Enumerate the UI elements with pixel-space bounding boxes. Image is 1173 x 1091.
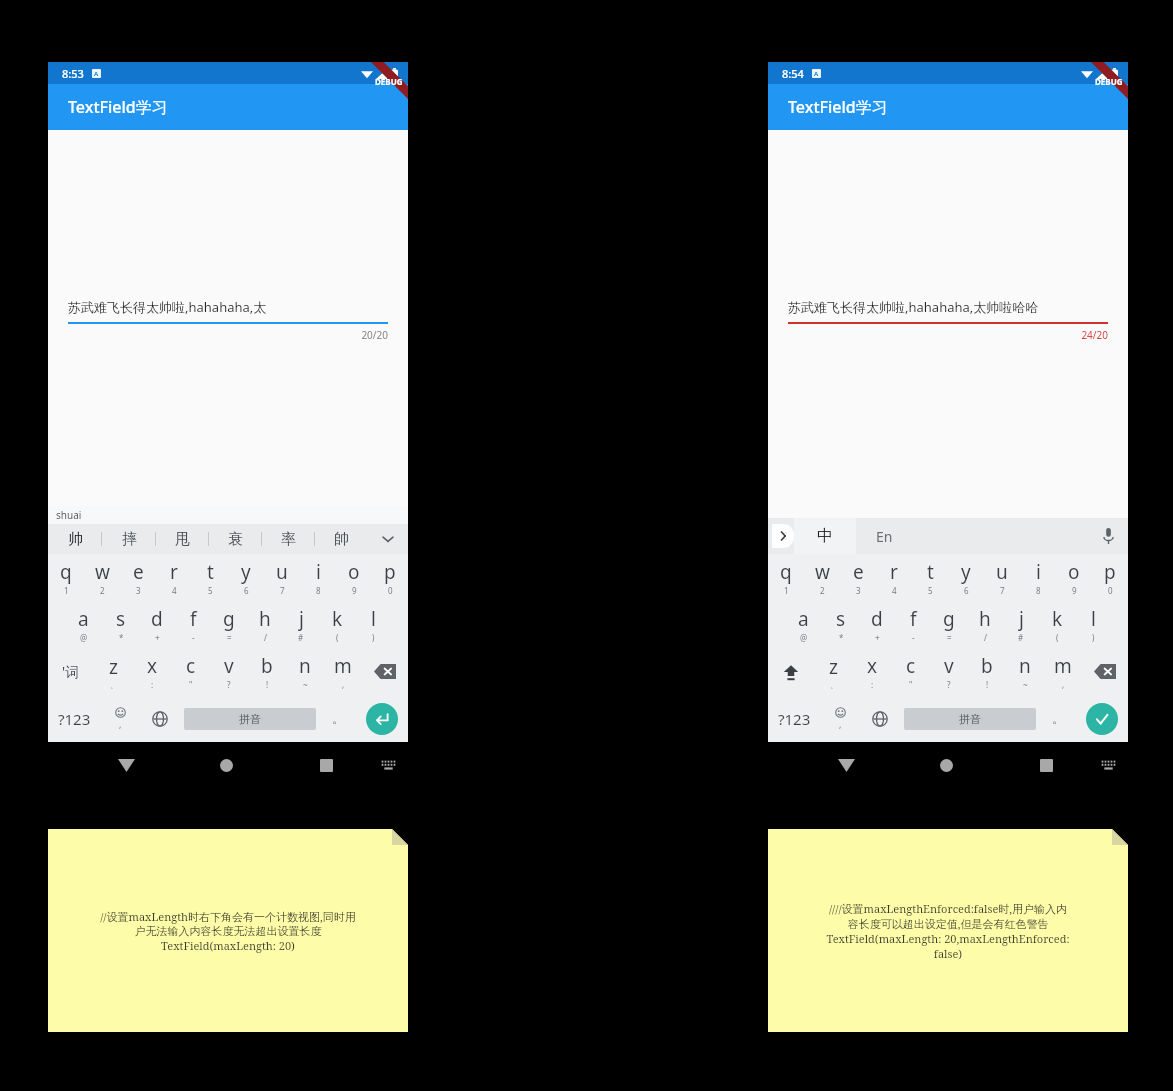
button[interactable]: v bbox=[930, 648, 968, 695]
button[interactable]: Enter bbox=[366, 703, 398, 735]
button[interactable]: a bbox=[65, 601, 102, 648]
button[interactable]: Home bbox=[926, 745, 966, 785]
button[interactable]: Confirm bbox=[1086, 703, 1118, 735]
button[interactable]: Emoji bbox=[820, 695, 860, 742]
button[interactable]: 摔 bbox=[102, 524, 156, 554]
button[interactable]: c bbox=[172, 648, 210, 695]
button[interactable]: 拼音 bbox=[904, 708, 1036, 730]
button[interactable]: y bbox=[228, 554, 264, 601]
button[interactable]: Word mode bbox=[48, 648, 94, 695]
button[interactable]: En bbox=[856, 518, 1088, 554]
button[interactable]: n bbox=[286, 648, 324, 695]
button[interactable]: i bbox=[1020, 554, 1056, 601]
button[interactable]: k bbox=[1039, 601, 1075, 648]
button[interactable]: z bbox=[94, 648, 133, 695]
button[interactable]: g bbox=[931, 601, 967, 648]
button[interactable]: Expand toolbar bbox=[772, 524, 794, 548]
staticText: '词 bbox=[62, 662, 80, 681]
button[interactable]: w bbox=[804, 554, 840, 601]
button[interactable]: 甩 bbox=[156, 524, 209, 554]
button[interactable]: b bbox=[248, 648, 286, 695]
button[interactable]: x bbox=[133, 648, 172, 695]
button[interactable]: Shift bbox=[768, 648, 814, 695]
button[interactable]: Change keyboard bbox=[860, 695, 900, 742]
button[interactable]: e bbox=[840, 554, 876, 601]
button[interactable]: b bbox=[968, 648, 1006, 695]
button[interactable]: s bbox=[102, 601, 139, 648]
button[interactable]: 。 bbox=[320, 695, 356, 742]
button[interactable]: o bbox=[336, 554, 372, 601]
button[interactable]: 拼音 bbox=[184, 708, 316, 730]
button[interactable]: Backspace bbox=[362, 648, 408, 695]
staticText: o bbox=[1068, 559, 1080, 585]
staticText: " bbox=[909, 679, 913, 690]
button[interactable]: y bbox=[948, 554, 984, 601]
button[interactable]: ?123 bbox=[48, 695, 100, 742]
button[interactable]: u bbox=[984, 554, 1020, 601]
button[interactable]: x bbox=[853, 648, 892, 695]
staticText: u bbox=[276, 559, 288, 585]
button[interactable]: o bbox=[1056, 554, 1092, 601]
button[interactable]: g bbox=[211, 601, 247, 648]
button[interactable]: Keyboard bbox=[1088, 745, 1128, 785]
button[interactable]: Voice input bbox=[1088, 518, 1128, 554]
button[interactable]: u bbox=[264, 554, 300, 601]
button[interactable]: Recents bbox=[306, 745, 346, 785]
button[interactable]: Expand candidates bbox=[368, 524, 408, 554]
button[interactable]: l bbox=[355, 601, 391, 648]
button[interactable]: t bbox=[192, 554, 228, 601]
button[interactable]: r bbox=[156, 554, 192, 601]
button[interactable]: 。 bbox=[1040, 695, 1076, 742]
button[interactable]: p bbox=[1092, 554, 1128, 601]
button[interactable]: i bbox=[300, 554, 336, 601]
button[interactable]: l bbox=[1075, 601, 1111, 648]
button[interactable]: 中 bbox=[794, 518, 856, 554]
button[interactable]: 帅 bbox=[48, 524, 102, 554]
button[interactable]: p bbox=[372, 554, 408, 601]
button[interactable]: c bbox=[892, 648, 930, 695]
staticText: 、 bbox=[830, 680, 838, 690]
button[interactable]: Back bbox=[106, 745, 146, 785]
button[interactable]: d bbox=[139, 601, 175, 648]
button[interactable]: v bbox=[210, 648, 248, 695]
button[interactable]: 苏武难飞长得太帅啦,hahahaha,太帅啦哈哈 bbox=[788, 298, 1108, 342]
button[interactable]: q bbox=[48, 554, 84, 601]
button[interactable]: f bbox=[175, 601, 211, 648]
button[interactable]: h bbox=[967, 601, 1003, 648]
button[interactable]: k bbox=[319, 601, 355, 648]
button[interactable]: d bbox=[859, 601, 895, 648]
button[interactable]: 衰 bbox=[209, 524, 262, 554]
button[interactable]: 帥 bbox=[315, 524, 368, 554]
button[interactable]: f bbox=[895, 601, 931, 648]
button[interactable]: a bbox=[785, 601, 822, 648]
staticText: * bbox=[119, 632, 124, 643]
button[interactable]: h bbox=[247, 601, 283, 648]
button[interactable]: r bbox=[876, 554, 912, 601]
button[interactable]: Home bbox=[206, 745, 246, 785]
button[interactable]: Keyboard bbox=[368, 745, 408, 785]
button[interactable]: s bbox=[822, 601, 859, 648]
button[interactable]: Backspace bbox=[1082, 648, 1128, 695]
button[interactable]: t bbox=[912, 554, 948, 601]
button[interactable]: Recents bbox=[1026, 745, 1066, 785]
button[interactable]: Change keyboard bbox=[140, 695, 180, 742]
button[interactable]: w bbox=[84, 554, 120, 601]
staticText: r bbox=[890, 559, 898, 585]
staticText: 甩 bbox=[175, 530, 190, 549]
button[interactable]: m bbox=[1044, 648, 1082, 695]
button[interactable]: m bbox=[324, 648, 362, 695]
button[interactable]: 苏武难飞长得太帅啦,hahahaha,太 bbox=[68, 298, 388, 342]
button[interactable]: ?123 bbox=[768, 695, 820, 742]
button[interactable]: n bbox=[1006, 648, 1044, 695]
staticText: s bbox=[116, 606, 126, 632]
button[interactable]: j bbox=[1003, 601, 1039, 648]
button[interactable]: Back bbox=[826, 745, 866, 785]
button[interactable]: j bbox=[283, 601, 319, 648]
button[interactable]: 率 bbox=[262, 524, 315, 554]
staticText: f bbox=[910, 606, 917, 632]
button[interactable]: e bbox=[120, 554, 156, 601]
button[interactable]: Emoji bbox=[100, 695, 140, 742]
staticText: g bbox=[943, 606, 955, 632]
button[interactable]: q bbox=[768, 554, 804, 601]
button[interactable]: z bbox=[814, 648, 853, 695]
